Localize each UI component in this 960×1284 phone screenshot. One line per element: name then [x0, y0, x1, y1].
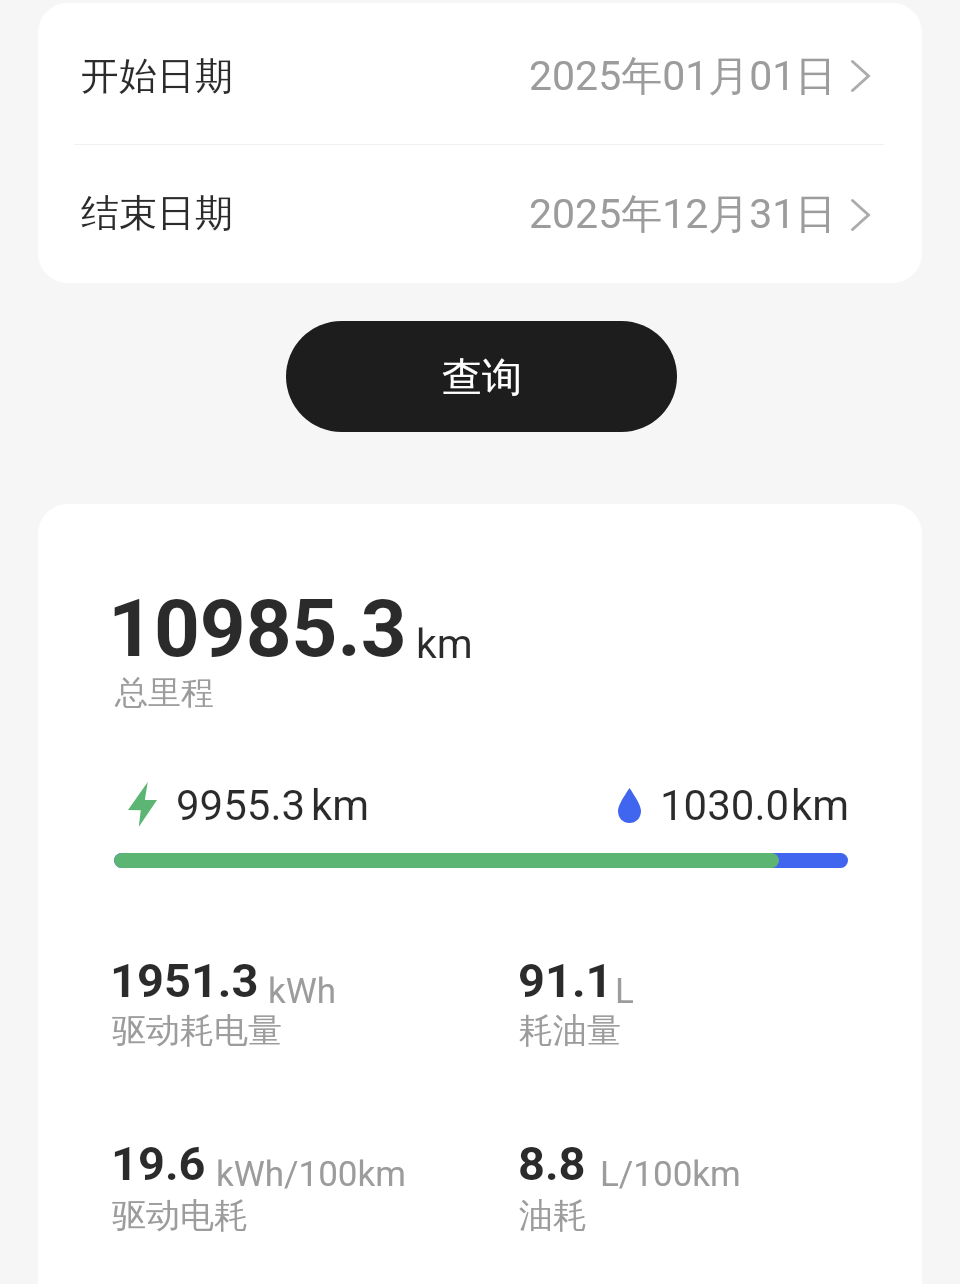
staticText: 驱动耗电量 — [112, 1009, 282, 1052]
staticText: 结束日期 — [81, 189, 233, 237]
button[interactable]: 结束日期 — [38, 144, 922, 283]
staticText: 19.6 — [111, 1136, 206, 1191]
other: Electric distance — [128, 782, 157, 827]
staticText: kWh — [268, 971, 337, 1012]
staticText: 1030.0 — [660, 781, 790, 830]
other: Open date picker — [851, 60, 870, 92]
staticText: km — [791, 781, 850, 830]
staticText: 查询 — [442, 352, 522, 402]
staticText: 驱动电耗 — [112, 1194, 248, 1237]
staticText: kWh/100km — [216, 1154, 406, 1195]
staticText: L — [615, 971, 634, 1012]
staticText: 油耗 — [519, 1194, 587, 1237]
staticText: L/100km — [600, 1154, 741, 1195]
staticText: 91.1 — [518, 953, 613, 1008]
staticText: 2025年12月31日 — [529, 189, 837, 241]
button[interactable]: 查询 — [286, 321, 677, 432]
staticText: 2025年01月01日 — [529, 51, 837, 103]
staticText: 10985.3 — [108, 582, 407, 676]
staticText: 8.8 — [518, 1136, 586, 1191]
staticText: 总里程 — [115, 672, 214, 714]
staticText: 1951.3 — [110, 953, 259, 1008]
other: Fuel distance — [618, 788, 641, 823]
staticText: 耗油量 — [519, 1009, 621, 1052]
staticText: 9955.3 — [176, 781, 306, 830]
staticText: km — [311, 781, 370, 830]
staticText: 开始日期 — [81, 52, 233, 100]
staticText: km — [416, 620, 473, 668]
other: Open date picker — [851, 199, 870, 231]
button[interactable]: 开始日期 — [38, 3, 922, 143]
